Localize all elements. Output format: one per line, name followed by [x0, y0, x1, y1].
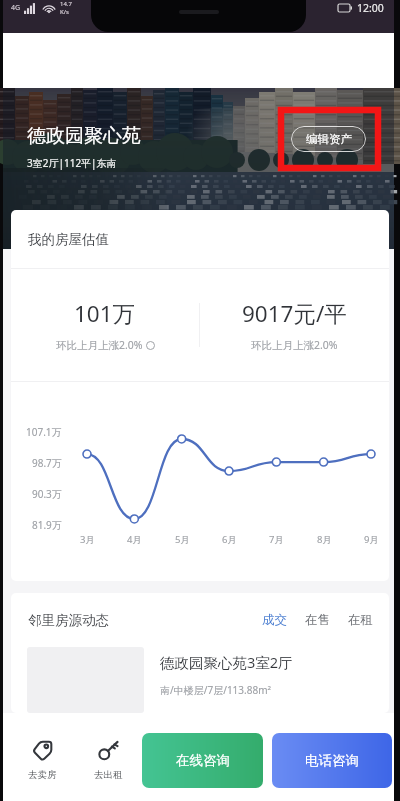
staticText: 5月	[175, 533, 190, 546]
staticText: 在租	[348, 612, 373, 628]
staticText: 德政园聚心苑	[27, 124, 141, 148]
button[interactable]: 编辑资产	[291, 126, 366, 152]
staticText: 电话咨询	[305, 752, 359, 769]
staticText: 107.1万	[26, 425, 62, 439]
button[interactable]: 在线咨询	[142, 733, 263, 788]
staticText: 去卖房	[28, 769, 57, 781]
other: 去卖房	[32, 740, 53, 761]
staticText: 6月	[222, 533, 237, 546]
staticText: 3月	[80, 533, 95, 546]
button[interactable]: 去出租	[80, 740, 136, 781]
staticText: 成交	[262, 612, 287, 628]
staticText: 4G	[11, 3, 21, 13]
staticText: 德政园聚心苑3室2厅	[160, 652, 293, 672]
staticText: 环比上月上涨2.0%	[251, 338, 338, 352]
button[interactable]: 电话咨询	[272, 733, 392, 788]
staticText: 4月	[127, 533, 142, 546]
staticText: 环比上月上涨2.0%	[56, 338, 143, 352]
staticText: 101万	[74, 298, 136, 329]
staticText: 9月	[364, 533, 379, 546]
staticText: 在售	[305, 612, 330, 628]
staticText: 在线咨询	[176, 752, 230, 769]
staticText: 3室2厅|112平|东南	[27, 156, 117, 170]
staticText: 90.3万	[32, 487, 62, 501]
button[interactable]: 在售	[301, 608, 334, 632]
staticText: 98.7万	[32, 456, 62, 470]
staticText: 9017元/平	[242, 298, 347, 329]
staticText: 8月	[317, 533, 332, 546]
staticText: K/s	[60, 8, 69, 16]
staticText: 12:00	[357, 1, 384, 15]
other: 去出租	[98, 740, 119, 761]
button[interactable]: 德政园聚心苑3室2厅	[11, 647, 389, 713]
button[interactable]: 去卖房	[14, 740, 70, 781]
staticText: 7月	[269, 533, 284, 546]
staticText: 去出租	[94, 769, 123, 781]
staticText: 14.7	[60, 0, 72, 8]
staticText: 南/中楼层/7层/113.88m²	[160, 683, 272, 697]
button[interactable]: 成交	[258, 608, 291, 632]
staticText: 81.9万	[32, 518, 62, 532]
staticText: 邻里房源动态	[28, 612, 109, 629]
button[interactable]: 在租	[344, 608, 377, 632]
staticText: 我的房屋估值	[28, 231, 109, 248]
staticText: 编辑资产	[306, 132, 352, 146]
